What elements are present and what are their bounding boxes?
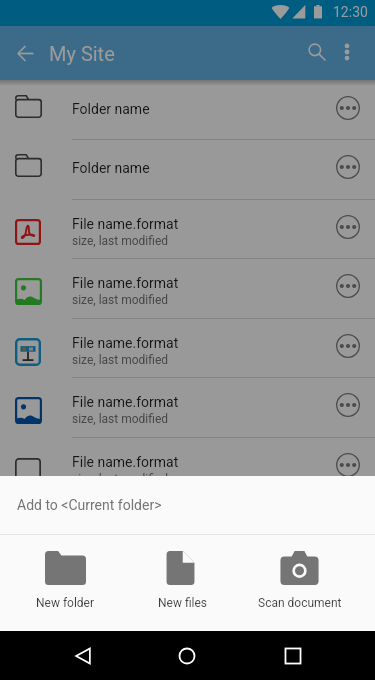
staticText: New folder bbox=[36, 596, 95, 610]
staticText: size, last modified bbox=[72, 353, 169, 367]
button[interactable]: File name.format bbox=[0, 200, 375, 260]
button[interactable]: More options bbox=[321, 259, 375, 318]
button[interactable]: Search bbox=[293, 29, 341, 77]
button[interactable]: More options bbox=[321, 81, 375, 140]
button[interactable]: File name.format bbox=[0, 319, 375, 379]
staticText: File name.format bbox=[72, 394, 179, 410]
staticText: File name.format bbox=[72, 275, 179, 291]
button[interactable]: More options bbox=[321, 140, 375, 199]
staticText: File name.format bbox=[72, 454, 179, 470]
staticText: size, last modified bbox=[72, 293, 169, 307]
button[interactable]: Folder name bbox=[0, 140, 375, 200]
button[interactable]: More options bbox=[321, 438, 375, 497]
button[interactable]: File name.format bbox=[0, 259, 375, 319]
staticText: size, last modified bbox=[72, 234, 169, 248]
staticText: File name.format bbox=[72, 216, 179, 232]
button[interactable]: Back bbox=[59, 632, 107, 680]
staticText: size, last modified bbox=[72, 412, 169, 426]
staticText: Folder name bbox=[72, 101, 150, 117]
staticText: Scan document bbox=[258, 596, 342, 610]
staticText: New files bbox=[158, 596, 208, 610]
button[interactable]: Scan document bbox=[241, 535, 358, 631]
staticText: File name.format bbox=[72, 335, 179, 351]
staticText: 12:30 bbox=[333, 4, 368, 20]
button[interactable]: More options bbox=[321, 200, 375, 259]
button[interactable]: More options bbox=[321, 378, 375, 437]
staticText: My Site bbox=[49, 42, 115, 65]
staticText: Add to <Current folder> bbox=[17, 497, 162, 513]
button[interactable]: File name.format bbox=[0, 438, 375, 498]
button[interactable]: File name.format bbox=[0, 378, 375, 438]
button[interactable]: New files bbox=[124, 535, 241, 631]
button[interactable]: Back bbox=[1, 29, 49, 77]
button[interactable]: More options bbox=[323, 29, 371, 77]
button[interactable]: Home bbox=[163, 632, 211, 680]
staticText: Folder name bbox=[72, 160, 150, 176]
button[interactable]: More options bbox=[321, 319, 375, 378]
button[interactable]: New folder bbox=[7, 535, 124, 631]
staticText: size, last modified bbox=[72, 472, 169, 486]
button[interactable]: Recents bbox=[269, 632, 317, 680]
button[interactable]: Folder name bbox=[0, 81, 375, 141]
